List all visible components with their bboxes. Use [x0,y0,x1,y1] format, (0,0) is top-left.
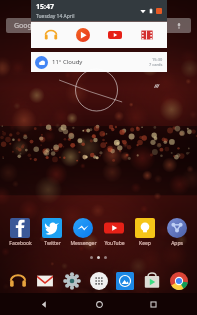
button[interactable]: YouTube [99,217,129,248]
staticText: Apps [171,240,183,247]
staticText: YouTube [104,240,125,247]
button[interactable]: Settings [60,269,84,293]
button[interactable]: Home [88,293,110,315]
button[interactable]: Back [33,293,55,315]
button[interactable]: YouTube [103,23,127,47]
button[interactable]: Music [6,269,30,293]
button[interactable]: Facebook [5,217,35,248]
staticText: 15:30 [152,57,163,62]
button[interactable]: All apps [87,269,111,293]
staticText: Facebook [9,240,32,247]
button[interactable]: Play Music [71,23,95,47]
other: Alert [156,8,162,14]
button[interactable]: Keep [130,217,160,248]
button[interactable]: Play Store [140,269,164,293]
button[interactable]: Headphones [39,23,63,47]
button[interactable]: 11° Cloudy [35,52,163,72]
button[interactable]: Gmail [33,269,57,293]
staticText: Keep [139,240,151,247]
staticText: Google [14,21,38,31]
staticText: Messenger [70,240,97,247]
staticText: Twitter [44,240,61,247]
button[interactable]: Recents [142,293,164,315]
button[interactable]: Twitter [37,217,67,248]
button[interactable]: Play Movies [135,23,159,47]
staticText: 7 cards [149,62,163,67]
button[interactable]: Apps [162,217,192,248]
button[interactable]: Google [6,18,191,33]
staticText: 11° Cloudy [52,58,149,66]
other: Voice search [175,22,183,30]
button[interactable]: Chrome [167,269,191,293]
button[interactable]: Photos [113,269,137,293]
staticText: 15:47 [36,2,54,12]
staticText: Tuesday 14 April [36,13,75,20]
button[interactable]: Messenger [68,217,98,248]
